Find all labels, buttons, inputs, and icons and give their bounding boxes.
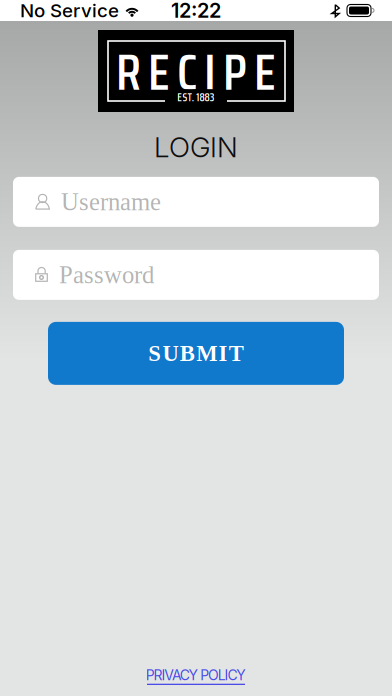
- button[interactable]: Username: [13, 177, 379, 227]
- staticText: No Service: [20, 0, 119, 22]
- button[interactable]: Password: [13, 250, 379, 300]
- staticText: Username: [61, 188, 161, 215]
- staticText: Password: [59, 261, 154, 288]
- staticText: SUBMIT: [148, 341, 244, 366]
- button[interactable]: SUBMIT: [48, 322, 344, 385]
- button[interactable]: PRIVACY POLICY: [146, 667, 246, 685]
- staticText: PRIVACY POLICY: [146, 667, 246, 684]
- staticText: LOGIN: [154, 130, 238, 164]
- staticText: EST. 1883: [177, 89, 215, 106]
- staticText: 12:22: [171, 0, 221, 23]
- staticText: RECIPE: [116, 32, 276, 112]
